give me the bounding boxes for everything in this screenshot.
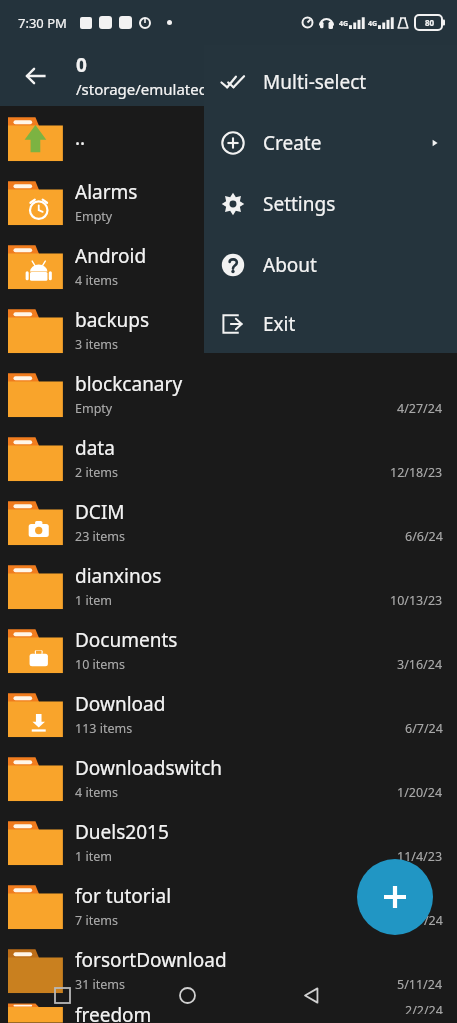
staticText: Settings xyxy=(263,191,336,217)
button[interactable]: About xyxy=(204,234,457,295)
staticText: DCIM xyxy=(75,499,125,525)
staticText: About xyxy=(263,252,317,278)
staticText: 4G xyxy=(368,19,378,29)
staticText: 3/16/24 xyxy=(397,656,443,673)
staticText: 31 items xyxy=(75,976,126,993)
staticText: 7 items xyxy=(75,912,118,929)
button[interactable]: .. xyxy=(0,106,457,170)
button[interactable]: forsortDownload xyxy=(0,938,457,1002)
button[interactable]: Multi-select xyxy=(204,51,457,112)
staticText: for tutorial xyxy=(75,883,172,909)
staticText: data xyxy=(75,435,115,461)
staticText: 4 items xyxy=(75,272,118,289)
staticText: 1 item xyxy=(75,592,112,609)
button[interactable]: Android xyxy=(0,234,457,298)
staticText: dianxinos xyxy=(75,563,162,589)
staticText: 2 items xyxy=(75,464,118,481)
staticText: /storage/emulated/0 xyxy=(76,79,223,99)
staticText: freedom xyxy=(75,1002,152,1023)
button[interactable]: Create new xyxy=(357,859,433,935)
staticText: Empty xyxy=(75,208,113,225)
staticText: 2/2/24 xyxy=(405,1002,443,1014)
staticText: 4/27/24 xyxy=(397,400,443,417)
staticText: Empty xyxy=(75,400,113,417)
button[interactable]: Documents xyxy=(0,618,457,682)
staticText: Download xyxy=(75,691,166,717)
staticText: 80 xyxy=(425,17,435,28)
staticText: 3 items xyxy=(75,336,118,353)
staticText: 5/7/24 xyxy=(405,912,443,929)
button[interactable]: Back xyxy=(249,967,373,1023)
staticText: Multi-select xyxy=(263,69,367,95)
staticText: 113 items xyxy=(75,720,133,737)
staticText: Downloadswitch xyxy=(75,755,223,781)
staticText: blockcanary xyxy=(75,371,183,397)
button[interactable]: dianxinos xyxy=(0,554,457,618)
staticText: 7:30 PM xyxy=(18,14,67,32)
button[interactable]: DCIM xyxy=(0,490,457,554)
staticText: 1/20/24 xyxy=(397,784,443,801)
staticText: Exit xyxy=(263,311,296,337)
button[interactable]: for tutorial xyxy=(0,874,457,938)
staticText: Duels2015 xyxy=(75,819,169,845)
button[interactable]: backups xyxy=(0,298,457,362)
staticText: 6/7/24 xyxy=(405,720,443,737)
staticText: 6/6/24 xyxy=(405,528,443,545)
staticText: Documents xyxy=(75,627,178,653)
button[interactable]: Alarms xyxy=(0,170,457,234)
staticText: forsortDownload xyxy=(75,947,227,973)
staticText: backups xyxy=(75,307,150,333)
staticText: Create xyxy=(263,130,322,156)
staticText: Android xyxy=(75,243,147,269)
button[interactable]: Duels2015 xyxy=(0,810,457,874)
staticText: 10/13/23 xyxy=(390,592,443,609)
button[interactable]: Download xyxy=(0,682,457,746)
staticText: 5/11/24 xyxy=(397,976,443,993)
button[interactable]: Back xyxy=(12,52,60,100)
staticText: .. xyxy=(75,125,86,151)
button[interactable]: Exit xyxy=(204,295,457,353)
button[interactable]: freedom xyxy=(0,1002,457,1023)
button[interactable]: Settings xyxy=(204,173,457,234)
button[interactable]: Recents xyxy=(0,967,125,1023)
button[interactable]: Home xyxy=(125,967,249,1023)
staticText: 23 items xyxy=(75,528,126,545)
button[interactable]: data xyxy=(0,426,457,490)
staticText: 1 item xyxy=(75,848,112,865)
staticText: 12/18/23 xyxy=(390,464,443,481)
staticText: 4 items xyxy=(75,784,118,801)
button[interactable]: Downloadswitch xyxy=(0,746,457,810)
staticText: 4G xyxy=(339,19,349,29)
staticText: 0 xyxy=(76,52,87,78)
button[interactable]: blockcanary xyxy=(0,362,457,426)
staticText: Alarms xyxy=(75,179,138,205)
staticText: 11/4/23 xyxy=(397,848,443,865)
button[interactable]: Create xyxy=(204,112,457,173)
staticText: 10 items xyxy=(75,656,126,673)
